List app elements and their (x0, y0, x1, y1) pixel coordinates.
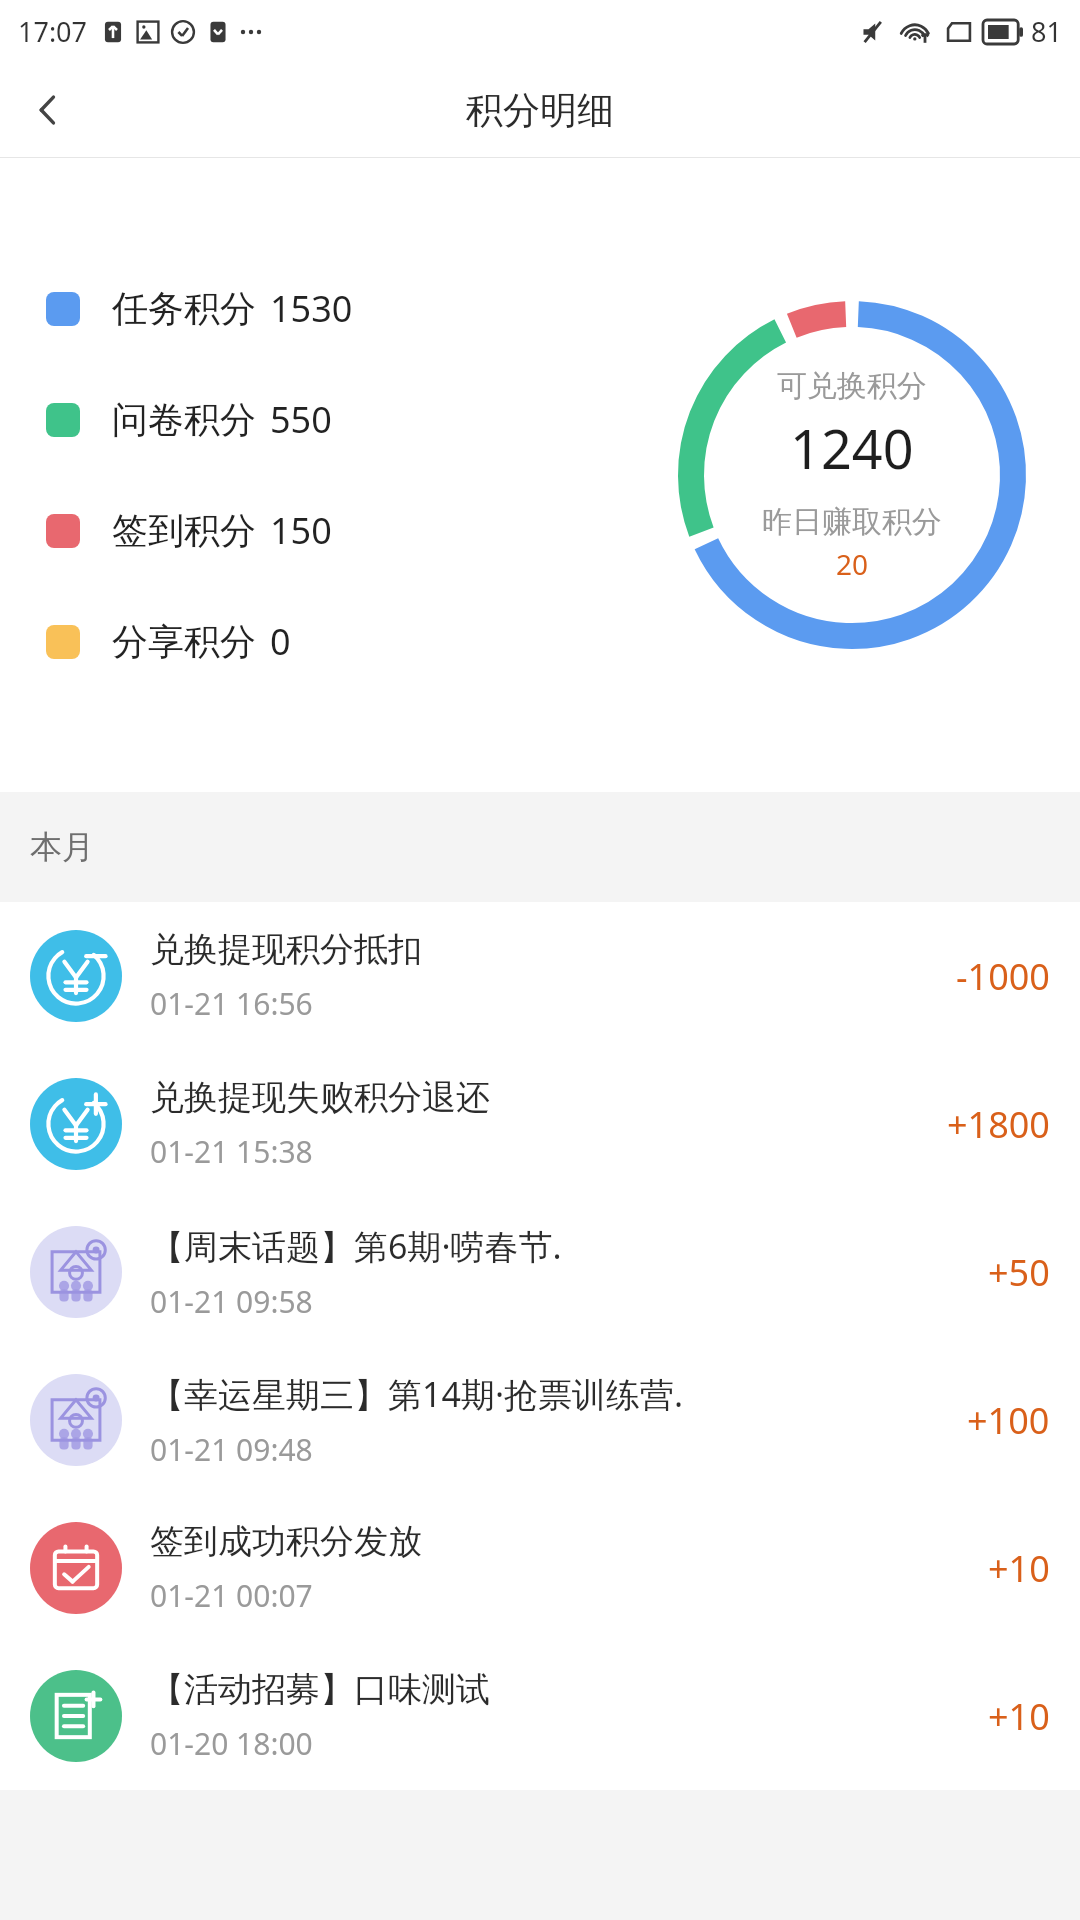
staticText: 问卷积分 (112, 397, 256, 442)
button[interactable]: 【周末话题】第6期·唠春节. (0, 1198, 1080, 1346)
button[interactable]: 兑换提现失败积分退还 (0, 1050, 1080, 1198)
staticText: 17:07 (18, 13, 88, 50)
staticText: 550 (270, 395, 332, 444)
button[interactable]: Back (0, 62, 96, 158)
staticText: 81 (1031, 13, 1062, 50)
staticText: 150 (270, 506, 332, 555)
staticText: 签到积分 (112, 508, 256, 553)
staticText: 分享积分 (112, 619, 256, 664)
staticText: 本月 (30, 827, 94, 867)
staticText: +50 (988, 1248, 1050, 1297)
staticText: +100 (967, 1396, 1050, 1445)
staticText: 01-21 09:48 (150, 1429, 313, 1470)
staticText: +10 (988, 1544, 1050, 1593)
staticText: 1530 (270, 284, 353, 333)
staticText: 积分明细 (466, 87, 614, 134)
staticText: 01-21 16:56 (150, 983, 313, 1024)
button[interactable]: 【活动招募】口味测试 (0, 1642, 1080, 1790)
staticText: 1240 (790, 411, 914, 485)
staticText: 01-20 18:00 (150, 1723, 313, 1764)
staticText: 签到成功积分发放 (150, 1520, 422, 1563)
staticText: 20 (836, 545, 869, 583)
staticText: 【活动招募】口味测试 (150, 1668, 490, 1711)
staticText: 昨日赚取积分 (762, 503, 942, 541)
staticText: 可兑换积分 (777, 367, 927, 405)
staticText: -1000 (956, 952, 1050, 1001)
staticText: 01-21 00:07 (150, 1575, 313, 1616)
staticText: 01-21 15:38 (150, 1131, 313, 1172)
staticText: +1800 (947, 1100, 1050, 1149)
staticText: 兑换提现积分抵扣 (150, 928, 422, 971)
button[interactable]: 兑换提现积分抵扣 (0, 902, 1080, 1050)
staticText: 兑换提现失败积分退还 (150, 1076, 490, 1119)
staticText: 01-21 09:58 (150, 1281, 313, 1322)
staticText: 任务积分 (112, 286, 256, 331)
staticText: 【幸运星期三】第14期·抢票训练营. (150, 1371, 684, 1417)
button[interactable]: 签到成功积分发放 (0, 1494, 1080, 1642)
staticText: +10 (988, 1692, 1050, 1741)
button[interactable]: 【幸运星期三】第14期·抢票训练营. (0, 1346, 1080, 1494)
staticText: 【周末话题】第6期·唠春节. (150, 1223, 562, 1269)
staticText: 0 (270, 617, 291, 666)
